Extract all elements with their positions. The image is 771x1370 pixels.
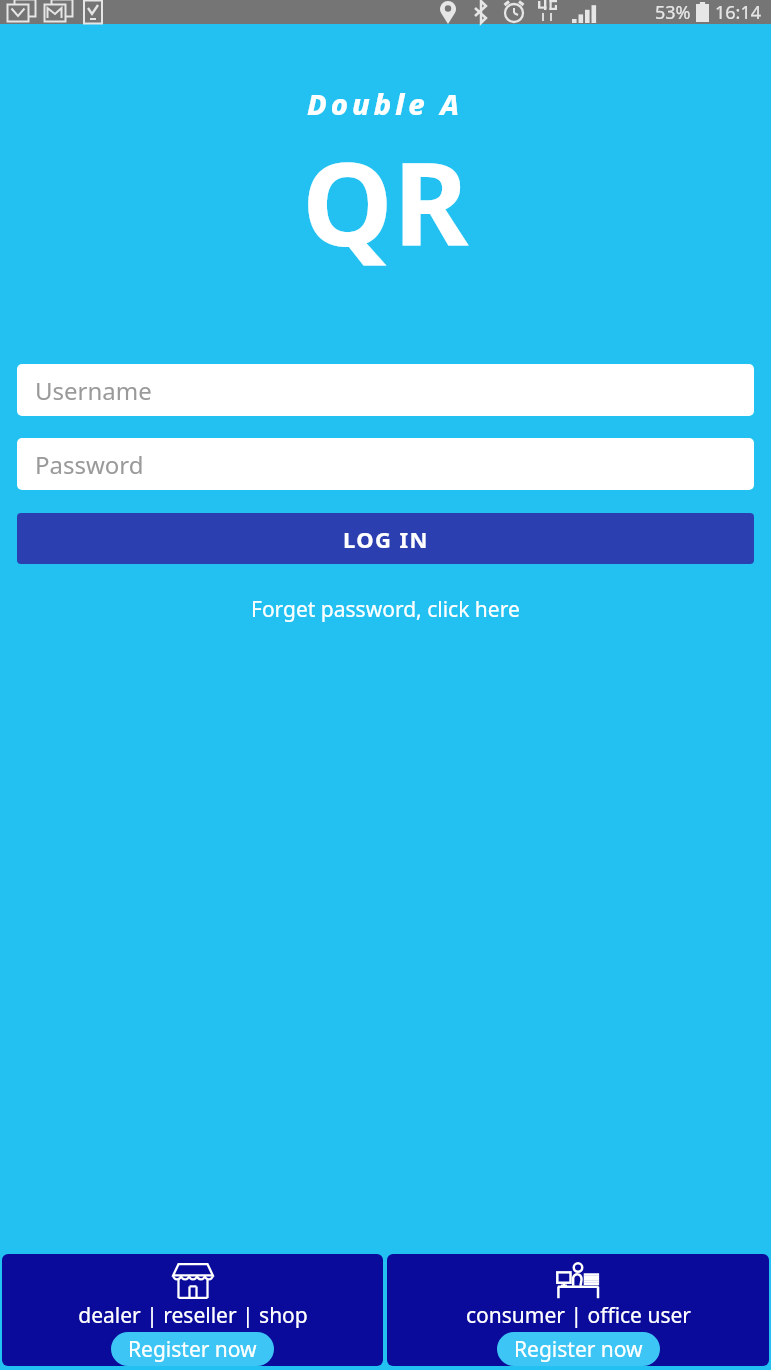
- staticText: Forget password, click here: [251, 595, 520, 624]
- button[interactable]: Register now: [497, 1332, 660, 1366]
- button[interactable]: consumer | office user: [387, 1254, 769, 1366]
- button[interactable]: Register now: [111, 1332, 274, 1366]
- staticText: Username: [35, 374, 152, 407]
- staticText: Password: [35, 448, 144, 481]
- staticText: Register now: [128, 1335, 257, 1363]
- other: dealer | reseller | shop: [171, 1262, 215, 1299]
- button[interactable]: Username: [17, 364, 754, 416]
- staticText: consumer | office user: [466, 1301, 691, 1330]
- button[interactable]: Forget password, click here: [0, 592, 771, 627]
- staticText: dealer | reseller | shop: [78, 1301, 308, 1330]
- staticText: Double A: [307, 84, 464, 123]
- staticText: QR: [302, 123, 469, 280]
- other: consumer | office user: [556, 1262, 600, 1299]
- staticText: LOG IN: [343, 524, 429, 554]
- staticText: 53%: [655, 0, 691, 24]
- button[interactable]: Password: [17, 438, 754, 490]
- staticText: Register now: [514, 1335, 643, 1363]
- button[interactable]: LOG IN: [17, 513, 754, 564]
- staticText: 16:14: [715, 0, 762, 24]
- button[interactable]: dealer | reseller | shop: [2, 1254, 383, 1366]
